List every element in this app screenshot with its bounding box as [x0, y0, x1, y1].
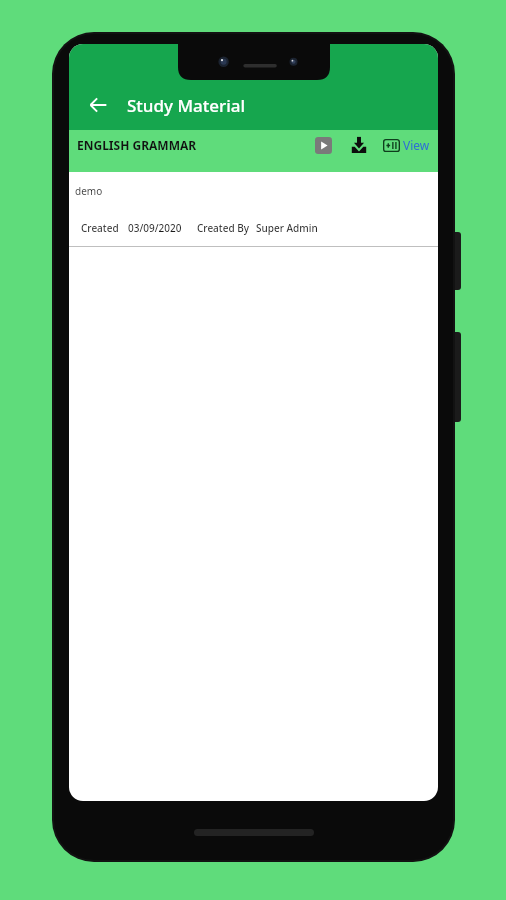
- button[interactable]: Play: [308, 130, 338, 160]
- button[interactable]: Back: [77, 84, 119, 126]
- button[interactable]: Download: [344, 130, 374, 160]
- staticText: 03/09/2020: [128, 221, 182, 235]
- staticText: Super Admin: [256, 221, 318, 235]
- staticText: demo: [75, 184, 103, 198]
- button[interactable]: View: [382, 137, 430, 153]
- staticText: ENGLISH GRAMMAR: [77, 137, 197, 153]
- button[interactable]: Created: [69, 210, 438, 246]
- staticText: Created: [81, 221, 119, 235]
- button[interactable]: demo: [69, 172, 438, 210]
- staticText: View: [403, 137, 430, 153]
- staticText: Study Material: [127, 94, 246, 117]
- staticText: Created By: [197, 221, 250, 235]
